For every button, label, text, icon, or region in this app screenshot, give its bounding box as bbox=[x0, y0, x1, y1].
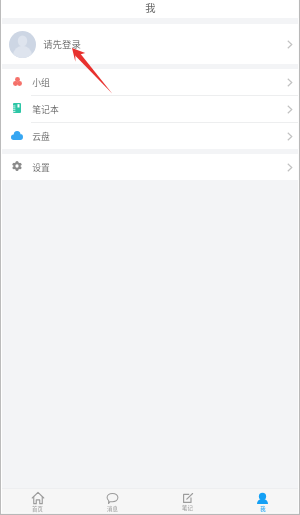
staticText: 笔记 bbox=[182, 504, 193, 512]
staticText: 请先登录 bbox=[43, 37, 81, 51]
button[interactable]: 笔记本 bbox=[0, 96, 300, 122]
button[interactable]: 我 Me bbox=[225, 489, 300, 515]
button[interactable]: 笔记 Notes bbox=[150, 489, 225, 515]
staticText: 小组 bbox=[32, 76, 50, 89]
button[interactable]: 请先登录 bbox=[0, 24, 300, 64]
staticText: 我 bbox=[260, 505, 266, 513]
staticText: 首页 bbox=[32, 505, 43, 513]
button[interactable]: 消息 Messages bbox=[75, 489, 150, 515]
staticText: 我 bbox=[145, 0, 156, 13]
staticText: 云盘 bbox=[32, 130, 50, 143]
button[interactable]: 云盘 bbox=[0, 123, 300, 149]
button[interactable]: 小组 bbox=[0, 69, 300, 95]
staticText: 笔记本 bbox=[32, 103, 59, 116]
button[interactable]: 设置 bbox=[0, 154, 300, 180]
staticText: 设置 bbox=[32, 161, 50, 174]
staticText: 消息 bbox=[107, 505, 118, 513]
button[interactable]: 首页 Home bbox=[0, 489, 75, 515]
